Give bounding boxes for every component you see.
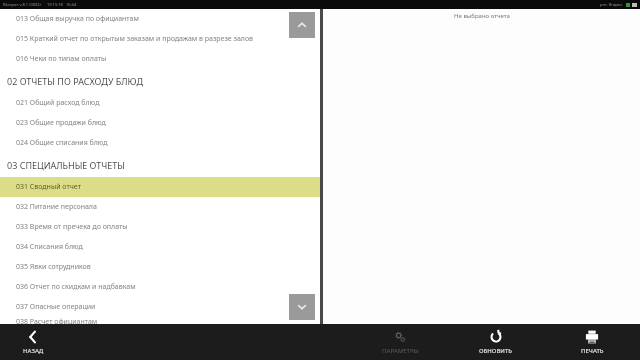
button[interactable]: 036 Отчет по скидкам и надбавкам [0, 277, 320, 297]
button[interactable]: 013 Общая выручка по официантам [0, 9, 320, 29]
button[interactable]: Scroll down [289, 294, 315, 320]
staticText: 037 Опасные операции [16, 302, 96, 312]
button[interactable]: 016 Чеки по типам оплаты [0, 49, 320, 69]
staticText: 038 Расчет официантам [16, 317, 98, 324]
staticText: 023 Общие продажи блюд [16, 118, 106, 128]
button[interactable]: ПАРАМЕТРЫ [352, 324, 448, 360]
staticText: 021 Общий расход блюд [16, 98, 100, 108]
button[interactable]: 015 Краткий отчет по открытым заказам и … [0, 29, 320, 49]
button[interactable]: 033 Время от пречека до оплаты [0, 217, 320, 237]
button[interactable]: 037 Опасные операции [0, 297, 320, 317]
staticText: НАЗАД [23, 347, 44, 355]
staticText: 016 Чеки по типам оплаты [16, 54, 107, 64]
button[interactable]: 03 СПЕЦИАЛЬНЫЕ ОТЧЕТЫ [0, 153, 320, 177]
staticText: 032 Питание персонала [16, 202, 97, 212]
staticText: 015 Краткий отчет по открытым заказам и … [16, 34, 254, 44]
staticText: ПЕЧАТЬ [581, 347, 604, 355]
button[interactable]: 035 Явки сотрудников [0, 257, 320, 277]
button[interactable]: 024 Общие списания блюд [0, 133, 320, 153]
staticText: ПАРАМЕТРЫ [382, 347, 419, 355]
staticText: 03 СПЕЦИАЛЬНЫЕ ОТЧЕТЫ [7, 159, 125, 171]
button[interactable]: 023 Общие продажи блюд [0, 113, 320, 133]
button[interactable]: 032 Питание персонала [0, 197, 320, 217]
button[interactable]: ОБНОВИТЬ [448, 324, 544, 360]
button[interactable]: 038 Расчет официантам [0, 317, 320, 324]
staticText: 034 Списания блюд [16, 242, 83, 252]
staticText: 031 Сводный отчет [16, 182, 81, 192]
staticText: 013 Общая выручка по официантам [16, 14, 139, 24]
staticText: 036 Отчет по скидкам и надбавкам [16, 282, 136, 292]
button[interactable]: 021 Общий расход блюд [0, 93, 320, 113]
button[interactable]: ПЕЧАТЬ [544, 324, 640, 360]
button[interactable]: 034 Списания блюд [0, 237, 320, 257]
staticText: 024 Общие списания блюд [16, 138, 108, 148]
button[interactable]: Scroll up [289, 12, 315, 38]
staticText: prn: Яндекс [600, 2, 623, 7]
staticText: 033 Время от пречека до оплаты [16, 222, 128, 232]
button[interactable]: НАЗАД [0, 324, 66, 360]
staticText: 02 ОТЧЕТЫ ПО РАСХОДУ БЛЮД [7, 75, 144, 87]
staticText: Rkeeper v.8.1 (0002) 19:15:18 16:44 [3, 2, 77, 7]
staticText: ОБНОВИТЬ [479, 347, 513, 355]
staticText: 035 Явки сотрудников [16, 262, 91, 272]
staticText: Не выбрано отчета [454, 12, 510, 20]
button[interactable]: 02 ОТЧЕТЫ ПО РАСХОДУ БЛЮД [0, 69, 320, 93]
button[interactable]: 031 Сводный отчет [0, 177, 320, 197]
